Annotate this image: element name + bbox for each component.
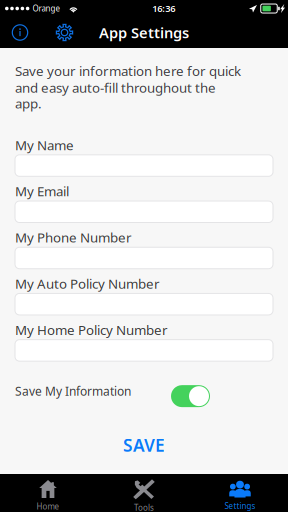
staticText: 16:36 [152, 2, 175, 15]
staticText: Home [36, 501, 59, 512]
button[interactable]: Information [0, 18, 40, 47]
staticText: My Phone Number [15, 228, 132, 246]
staticText: My Name [15, 136, 74, 154]
button[interactable]: Settings [192, 474, 288, 512]
staticText: and easy auto-fill throughout the [15, 79, 216, 96]
staticText: Tools [134, 502, 154, 512]
button[interactable]: Save My Information [171, 385, 210, 407]
button[interactable]: Tools [96, 474, 192, 512]
staticText: App Settings [99, 23, 189, 42]
staticText: app. [15, 94, 42, 112]
staticText: My Email [15, 182, 69, 200]
staticText: SAVE [123, 434, 165, 457]
staticText: Save your information here for quick [15, 62, 241, 80]
staticText: My Home Policy Number [15, 321, 168, 339]
staticText: Settings [224, 500, 255, 511]
staticText: Save My Information [15, 383, 131, 399]
staticText: My Auto Policy Number [15, 275, 160, 292]
button[interactable]: SAVE [15, 435, 273, 455]
button[interactable]: Home [0, 474, 96, 512]
button[interactable]: Settings [40, 18, 89, 47]
staticText: Orange [32, 3, 60, 14]
